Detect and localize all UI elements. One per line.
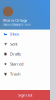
staticText: Trash <box>10 71 20 77</box>
staticText: Maria Ortega <box>3 18 27 23</box>
button[interactable]: Sign Out <box>0 90 50 100</box>
staticText: Drafts <box>10 51 21 57</box>
button[interactable]: Starred <box>0 59 50 69</box>
staticText: maria.o@example.com <box>3 23 30 26</box>
staticText: Sign Out <box>18 92 32 98</box>
staticText: Inbox <box>10 31 19 37</box>
button[interactable]: Drafts <box>0 49 50 59</box>
staticText: Sent <box>10 41 17 47</box>
staticText: Starred <box>10 61 23 67</box>
button[interactable]: Inbox <box>0 29 50 39</box>
button[interactable]: Sent <box>0 39 50 49</box>
button[interactable]: Trash <box>0 69 50 79</box>
